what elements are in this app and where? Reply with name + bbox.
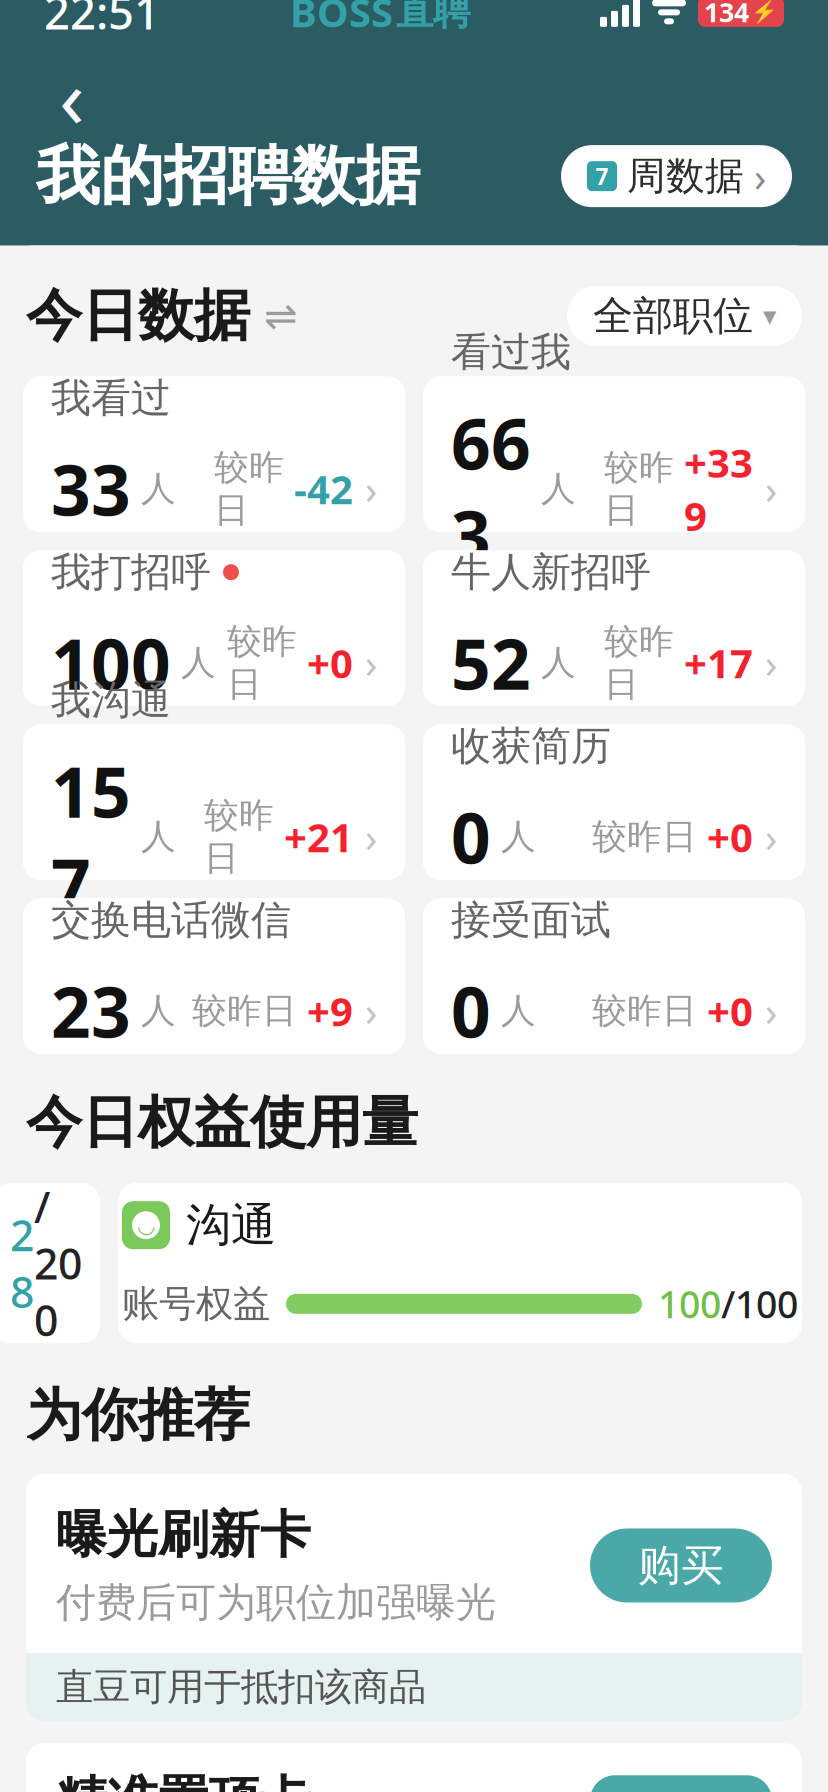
staticText: 今日权益使用量 xyxy=(26,1088,418,1157)
staticText: 0 xyxy=(451,965,491,1057)
staticText: ⇌ xyxy=(264,293,298,338)
staticText: +0 xyxy=(707,984,753,1037)
staticText: › xyxy=(365,462,377,515)
staticText: +17 xyxy=(684,636,753,689)
staticText: 为你推荐 xyxy=(26,1381,250,1450)
staticText: 人 xyxy=(181,641,216,684)
staticText: 663 xyxy=(451,397,531,581)
staticText: 直聘 xyxy=(396,0,470,35)
staticText: ‹ xyxy=(59,41,85,151)
staticText: /100 xyxy=(721,1279,798,1329)
staticText: 付费后可为职位加强曝光 xyxy=(56,1578,496,1627)
staticText: 账号权益 xyxy=(122,1281,270,1327)
button[interactable]: 我沟通 xyxy=(23,724,405,880)
staticText: 人 xyxy=(501,815,536,858)
staticText: +0 xyxy=(307,636,353,689)
staticText: 较昨日 xyxy=(214,446,284,531)
staticText: 今日数据 xyxy=(26,281,250,350)
staticText: 较昨日 xyxy=(604,620,674,705)
button[interactable]: 交换电话微信 xyxy=(23,898,405,1054)
staticText: › xyxy=(365,636,377,689)
button[interactable]: 收获简历 xyxy=(423,724,805,880)
staticText: +21 xyxy=(284,810,353,863)
button[interactable]: 购买 xyxy=(590,1528,772,1602)
button[interactable]: 牛人新招呼 xyxy=(423,550,805,706)
staticText: 人 xyxy=(141,467,176,510)
staticText: 我沟通 xyxy=(51,676,171,725)
staticText: 购买 xyxy=(638,1539,724,1592)
staticText: 人 xyxy=(141,815,176,858)
staticText: +0 xyxy=(707,810,753,863)
staticText: 周数据 xyxy=(627,152,744,200)
staticText: 全部职位 xyxy=(593,291,753,340)
staticText: 28 xyxy=(10,1206,34,1320)
staticText: 交换电话微信 xyxy=(51,896,291,945)
staticText: 较昨日 xyxy=(227,620,297,705)
staticText: 直豆可用于抵扣该商品 xyxy=(56,1664,426,1710)
staticText: 较昨日 xyxy=(204,794,274,879)
staticText: /200 xyxy=(34,1178,82,1348)
staticText: › xyxy=(765,462,777,515)
staticText: 人 xyxy=(141,989,176,1032)
staticText: › xyxy=(365,984,377,1037)
button[interactable]: ◡ xyxy=(118,1183,802,1343)
staticText: 较昨日 xyxy=(592,815,697,858)
button[interactable]: 接受面试 xyxy=(423,898,805,1054)
staticText: 较昨日 xyxy=(604,446,674,531)
staticText: 接受面试 xyxy=(451,896,611,945)
staticText: BOSS xyxy=(290,0,393,38)
button[interactable]: 全部职位 xyxy=(567,286,802,346)
staticText: 沟通 xyxy=(186,1197,276,1253)
staticText: 33 xyxy=(51,443,131,535)
staticText: 52 xyxy=(451,617,531,709)
staticText: 人 xyxy=(501,989,536,1032)
staticText: 较昨日 xyxy=(192,989,297,1032)
staticText: › xyxy=(765,810,777,863)
staticText: 我打招呼 xyxy=(51,548,211,597)
staticText: › xyxy=(754,150,766,203)
staticText: +339 xyxy=(684,436,753,542)
button[interactable]: 看过我 xyxy=(423,376,805,532)
staticText: 7 xyxy=(595,161,608,191)
staticText: 0 xyxy=(451,791,491,883)
staticText: 134 xyxy=(704,0,749,29)
staticText: 100 xyxy=(51,617,171,709)
staticText: 157 xyxy=(51,745,131,929)
button[interactable]: Back xyxy=(36,60,108,132)
staticText: ▾ xyxy=(763,301,776,331)
staticText: ⚡ xyxy=(751,0,778,24)
staticText: ◡ xyxy=(138,1213,154,1237)
staticText: 看过我 xyxy=(451,328,571,377)
button[interactable]: 我看过 xyxy=(23,376,405,532)
staticText: 我看过 xyxy=(51,374,171,423)
button[interactable]: 我打招呼 xyxy=(23,550,405,706)
staticText: 我的招聘数据 xyxy=(36,137,420,215)
staticText: 100 xyxy=(658,1279,721,1329)
staticText: 曝光刷新卡 xyxy=(56,1504,311,1566)
staticText: -42 xyxy=(294,462,353,515)
staticText: 22:51 xyxy=(44,0,160,42)
staticText: 23 xyxy=(51,965,131,1057)
button[interactable]: 7 xyxy=(561,145,792,207)
staticText: +9 xyxy=(307,984,353,1037)
staticText: › xyxy=(365,810,377,863)
staticText: 人 xyxy=(541,641,576,684)
staticText: 较昨日 xyxy=(592,989,697,1032)
staticText: 人 xyxy=(541,467,576,510)
staticText: › xyxy=(765,984,777,1037)
staticText: › xyxy=(765,636,777,689)
staticText: 牛人新招呼 xyxy=(451,548,651,597)
staticText: 收获简历 xyxy=(451,722,611,771)
button[interactable]: 28 xyxy=(0,1183,100,1343)
staticText: 精准置顶卡 xyxy=(56,1769,311,1792)
